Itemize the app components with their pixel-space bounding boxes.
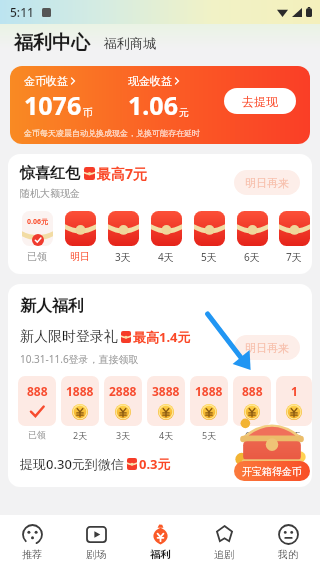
staticText: 惊喜红包: [20, 164, 80, 183]
button[interactable]: 福利中心: [14, 31, 90, 55]
staticText: 7天: [287, 429, 302, 441]
staticText: 6天: [245, 429, 260, 441]
staticText: 3888: [152, 383, 180, 399]
button[interactable]: 明日: [61, 210, 99, 263]
staticText: 1888: [195, 383, 223, 399]
staticText: 提现0.30元到微信: [20, 455, 124, 473]
staticText: 现金收益: [128, 74, 172, 88]
button[interactable]: 1888: [61, 376, 99, 441]
button[interactable]: 开宝箱得金币: [234, 411, 310, 487]
button[interactable]: 2888: [104, 376, 142, 441]
staticText: 1.06: [128, 88, 178, 122]
staticText: 最高1.4元: [133, 328, 191, 346]
button[interactable]: 明日再来: [234, 335, 300, 360]
button[interactable]: 金币收益: [10, 66, 310, 144]
staticText: 明日再来: [245, 176, 289, 190]
button[interactable]: 明日再来: [234, 170, 300, 195]
staticText: 推荐: [22, 548, 42, 561]
button[interactable]: 剧场: [64, 515, 128, 569]
staticText: 金币收益: [24, 74, 68, 88]
staticText: 0.3元: [139, 455, 171, 473]
staticText: 金币每天凌晨自动兑换成现金，兑换可能存在延时: [24, 128, 200, 138]
staticText: 888: [242, 383, 263, 399]
staticText: 5:11: [10, 4, 34, 20]
staticText: 已领: [28, 429, 46, 440]
staticText: 3天: [115, 250, 131, 264]
staticText: 去提现: [242, 94, 278, 109]
staticText: 追剧: [214, 548, 234, 561]
staticText: 7天: [286, 250, 302, 264]
staticText: 明日: [70, 250, 90, 263]
staticText: 新人福利: [20, 296, 84, 316]
staticText: 福利: [150, 548, 170, 561]
button[interactable]: 去提现: [224, 88, 296, 114]
staticText: 元: [179, 106, 189, 119]
button[interactable]: 福利: [128, 515, 192, 569]
staticText: 随机大额现金: [20, 187, 80, 200]
button[interactable]: 6天: [233, 210, 271, 264]
staticText: 最高7元: [97, 164, 148, 183]
staticText: 2天: [73, 429, 88, 441]
staticText: 新人限时登录礼: [20, 328, 118, 346]
button[interactable]: 888: [233, 376, 271, 441]
staticText: 明日再来: [245, 341, 289, 355]
staticText: 888: [27, 383, 48, 399]
staticText: 10.31-11.6登录，直接领取: [20, 352, 139, 366]
staticText: 开宝箱得金币: [242, 465, 302, 478]
button[interactable]: 3888: [147, 376, 185, 441]
button[interactable]: 我的: [256, 515, 320, 569]
button[interactable]: 1888: [190, 376, 228, 441]
staticText: 1076: [24, 88, 82, 122]
button[interactable]: 推荐: [0, 515, 64, 569]
staticText: 1888: [66, 383, 94, 399]
staticText: 6天: [244, 250, 260, 264]
button[interactable]: 0.06元: [18, 210, 56, 263]
button[interactable]: 4天: [147, 210, 185, 264]
staticText: 3天: [116, 429, 131, 441]
staticText: 0.06元: [27, 217, 48, 227]
staticText: 1: [291, 383, 298, 399]
button[interactable]: 888: [18, 376, 56, 440]
staticText: 5天: [202, 429, 217, 441]
button[interactable]: 3天: [104, 210, 142, 264]
staticText: 2888: [109, 383, 137, 399]
staticText: 剧场: [86, 548, 106, 561]
button[interactable]: 5天: [190, 210, 228, 264]
staticText: 我的: [278, 548, 298, 561]
button[interactable]: 7天: [276, 210, 312, 264]
staticText: 5天: [201, 250, 217, 264]
staticText: 4天: [158, 250, 174, 264]
staticText: 4天: [159, 429, 174, 441]
button[interactable]: 1: [276, 376, 312, 441]
staticText: 币: [83, 106, 93, 119]
button[interactable]: 福利商城: [104, 35, 156, 51]
button[interactable]: 追剧: [192, 515, 256, 569]
staticText: 已领: [27, 250, 47, 263]
